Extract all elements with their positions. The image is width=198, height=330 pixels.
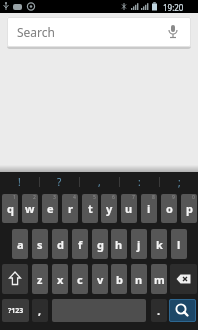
button[interactable]: q [2,194,18,223]
staticText: ! [18,175,21,189]
staticText: z [37,272,43,287]
button[interactable] [2,264,28,294]
staticText: ?123 [8,306,24,316]
button[interactable]: w [22,194,38,223]
staticText: r [68,201,73,216]
staticText: e [47,201,54,216]
staticText: u [125,201,133,216]
staticText: a [17,237,24,252]
staticText: . [157,303,161,318]
button[interactable]: f [72,229,88,259]
button[interactable]: z [32,264,48,294]
staticText: l [177,237,181,252]
staticText: 6 [112,194,115,201]
button[interactable]: r [62,194,78,223]
staticText: n [135,272,143,287]
button[interactable] [169,299,196,322]
staticText: 9 [172,194,175,201]
staticText: y [106,201,113,216]
staticText: d [57,237,64,252]
button[interactable]: g [92,229,108,259]
button[interactable]: ; [160,172,198,192]
button[interactable]: u [121,194,137,223]
button[interactable]: v [92,264,108,294]
button[interactable]: h [111,229,127,259]
button[interactable]: i [141,194,157,223]
button[interactable]: , [80,172,119,192]
staticText: 7 [132,194,135,201]
staticText: v [97,272,104,287]
staticText: 4 [73,194,76,201]
button[interactable]: t [82,194,98,223]
staticText: f [78,237,83,252]
button[interactable]: x [52,264,68,294]
button[interactable] [170,264,197,294]
button[interactable]: d [52,229,68,259]
staticText: k [156,237,163,252]
staticText: 8 [152,194,155,201]
staticText: m [154,272,165,287]
staticText: 2 [33,194,36,201]
button[interactable]: a [12,229,28,259]
button[interactable]: n [131,264,147,294]
staticText: j [137,237,141,252]
staticText: Search [17,24,55,40]
staticText: p [186,201,193,216]
button[interactable]: Search [7,17,191,47]
button[interactable]: y [101,194,117,223]
staticText: : [138,175,141,189]
button[interactable]: m [151,264,167,294]
button[interactable]: c [72,264,88,294]
staticText: , [98,175,101,189]
staticText: ; [178,175,181,189]
staticText: s [37,237,43,252]
staticText: b [116,272,123,287]
staticText: h [115,237,123,252]
button[interactable]: . [151,299,167,322]
staticText: , [38,303,42,318]
button[interactable]: ?123 [2,299,29,322]
staticText: 3 [53,194,56,201]
staticText: x [57,272,64,287]
button[interactable]: j [131,229,147,259]
staticText: g [97,237,104,252]
staticText: 0 [192,194,195,201]
staticText: 1 [13,194,16,201]
button[interactable]: , [32,299,48,322]
button[interactable]: b [111,264,127,294]
staticText: 5 [93,194,96,201]
button[interactable]: s [32,229,48,259]
staticText: t [88,201,93,216]
button[interactable]: o [161,194,177,223]
staticText: w [25,201,35,216]
staticText: 19:20 [163,2,184,13]
staticText: c [77,272,83,287]
button[interactable]: ? [40,172,79,192]
button[interactable]: l [171,229,187,259]
staticText: q [7,201,14,216]
button[interactable]: k [151,229,167,259]
staticText: o [166,201,173,216]
staticText: ? [57,175,62,189]
button[interactable]: : [120,172,159,192]
button[interactable]: p [181,194,197,223]
button[interactable]: e [42,194,58,223]
button[interactable]: ! [0,172,39,192]
staticText: i [147,201,151,216]
